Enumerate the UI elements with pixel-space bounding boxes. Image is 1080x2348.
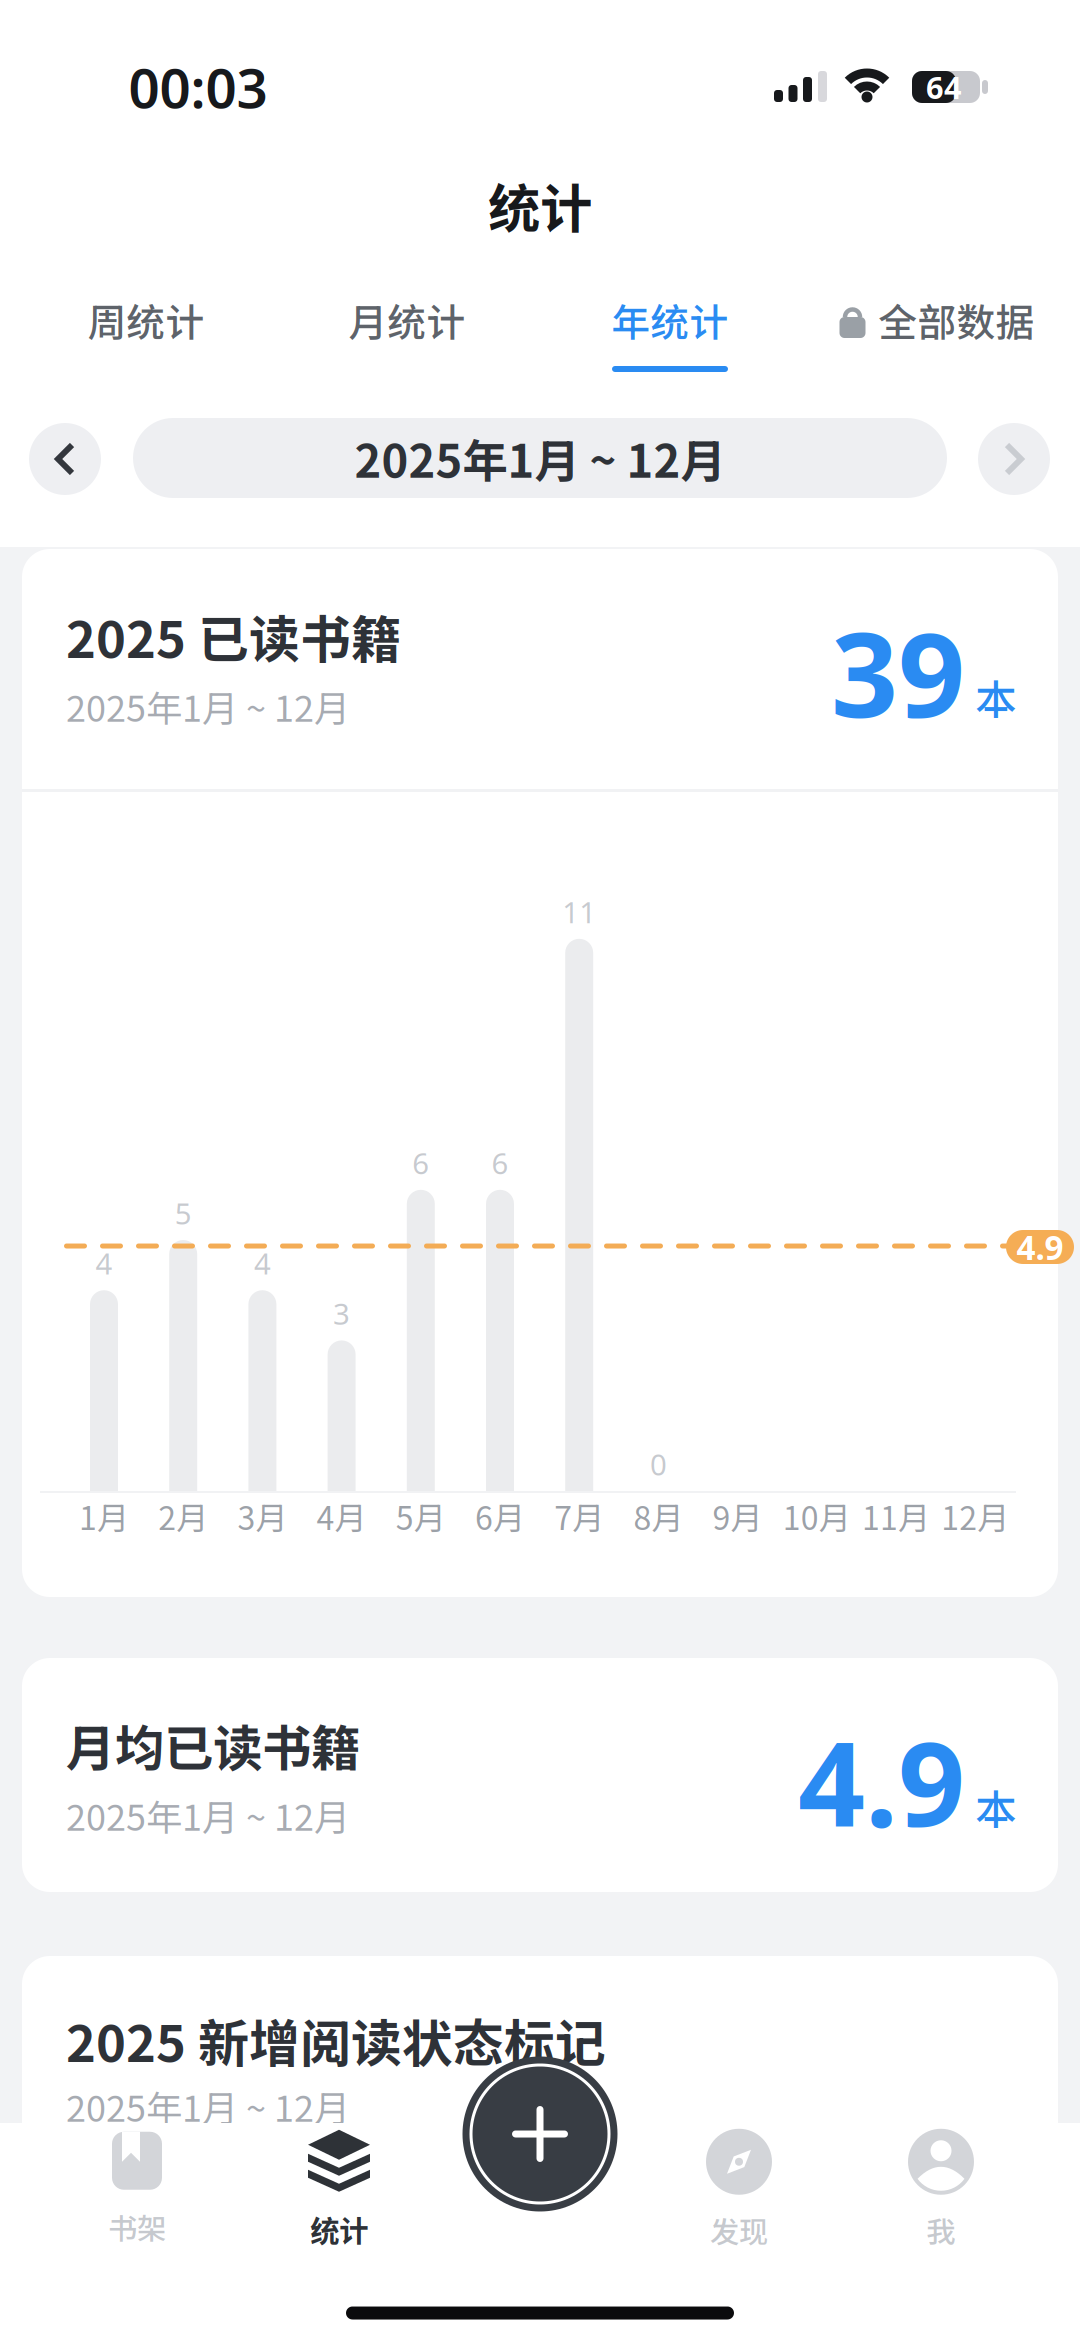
staticText: 4 (95, 1244, 112, 1283)
button[interactable]: Previous year (29, 423, 101, 495)
staticText: 全部数据 (878, 292, 1034, 348)
staticText: 5 (175, 1193, 192, 1232)
staticText: 2025年1月 ~ 12月 (66, 1789, 350, 1841)
staticText: 4.9 (798, 1703, 965, 1859)
staticText: 2025 新增阅读状态标记 (66, 2003, 606, 2077)
staticText: 年统计 (611, 292, 728, 348)
button[interactable]: 2025年1月 ~ 12月 (133, 418, 947, 498)
button[interactable]: 年统计 (611, 292, 728, 348)
staticText: 2月 (158, 1493, 208, 1539)
button[interactable]: 全部数据 (839, 292, 1034, 348)
staticText: 3月 (237, 1493, 287, 1539)
staticText: 本 (975, 667, 1016, 727)
staticText: 1月 (79, 1493, 129, 1539)
staticText: 6 (412, 1143, 429, 1182)
staticText: 39 (831, 594, 965, 750)
staticText: 2025 已读书籍 (66, 599, 402, 673)
staticText: 统计 (488, 167, 592, 243)
staticText: 64 (926, 67, 962, 107)
button[interactable]: 月统计 (348, 292, 465, 348)
staticText: 00:03 (128, 51, 267, 123)
staticText: 2025年1月 ~ 12月 (66, 2080, 350, 2132)
button[interactable]: 书架 (47, 2122, 227, 2258)
staticText: 4 (254, 1244, 271, 1283)
staticText: 10月 (783, 1493, 851, 1539)
button[interactable]: 周统计 (87, 292, 204, 348)
staticText: 4.9 (1016, 1225, 1063, 1269)
staticText: 我 (926, 2209, 955, 2251)
staticText: 本 (975, 1777, 1016, 1837)
staticText: 9月 (713, 1493, 763, 1539)
staticText: 月统计 (348, 292, 465, 348)
button[interactable]: 发现 (649, 2122, 829, 2258)
staticText: 5月 (396, 1493, 446, 1539)
staticText: 0 (650, 1444, 667, 1483)
button[interactable]: 我 (851, 2122, 1031, 2258)
staticText: 2025年1月 ~ 12月 (66, 680, 350, 732)
staticText: 4月 (317, 1493, 367, 1539)
button[interactable]: Next year (978, 423, 1050, 495)
staticText: 月均已读书籍 (66, 1709, 360, 1781)
staticText: 书架 (108, 2206, 166, 2248)
staticText: 11月 (862, 1493, 930, 1539)
staticText: 8月 (633, 1493, 683, 1539)
staticText: 6月 (475, 1493, 525, 1539)
staticText: 周统计 (87, 292, 204, 348)
staticText: 6 (491, 1143, 508, 1182)
staticText: 3 (333, 1294, 350, 1333)
staticText: 12月 (941, 1493, 1009, 1539)
staticText: 发现 (710, 2209, 768, 2251)
staticText: 11 (562, 892, 596, 931)
button[interactable]: Add (462, 2056, 617, 2211)
staticText: 2025年1月 ~ 12月 (354, 425, 725, 491)
staticText: 统计 (310, 2208, 368, 2250)
button[interactable]: 统计 (249, 2122, 429, 2258)
staticText: 7月 (554, 1493, 604, 1539)
